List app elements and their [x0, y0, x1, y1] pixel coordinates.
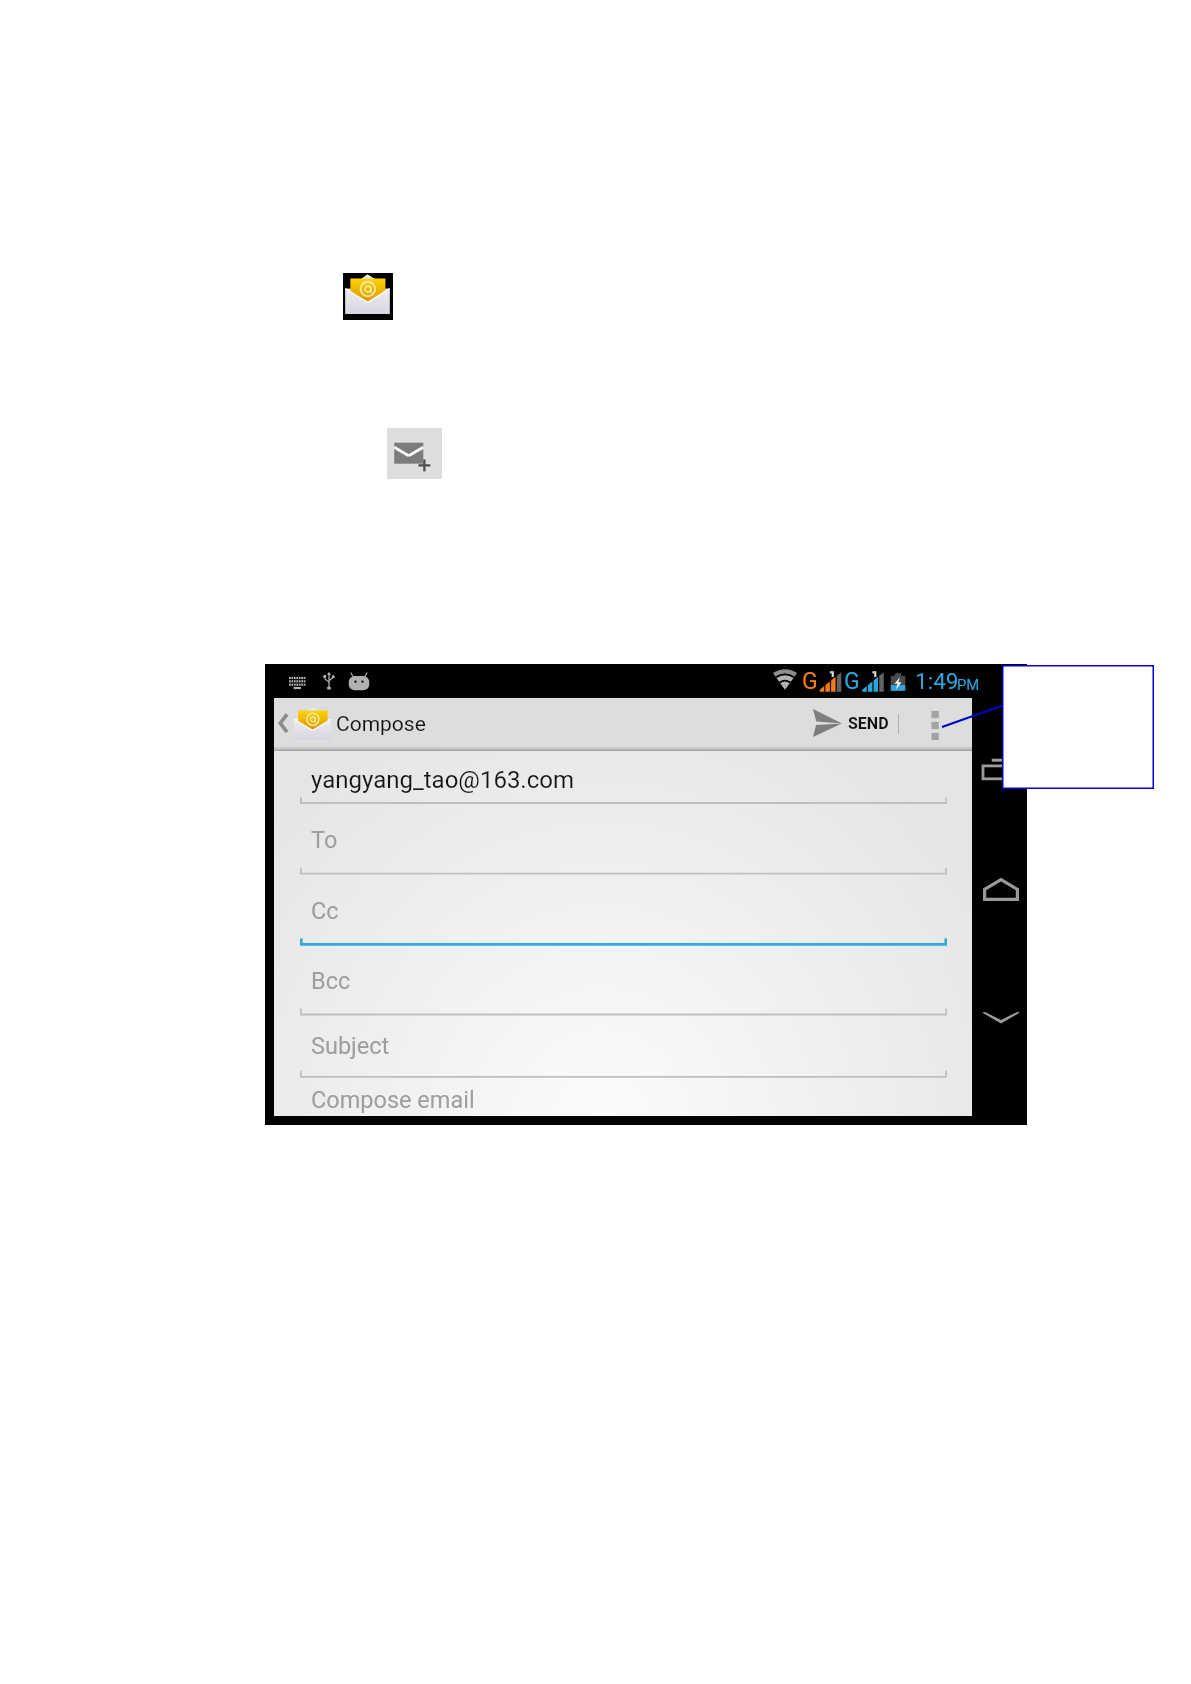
- button[interactable]: yangyang_tao@163.com: [311, 766, 574, 794]
- staticText: To: [311, 826, 338, 854]
- staticText: G: [802, 668, 818, 695]
- button[interactable]: Back: [982, 1012, 1020, 1024]
- button[interactable]: Navigate up: [278, 708, 290, 738]
- staticText: PM: [957, 676, 980, 693]
- button[interactable]: Recent apps: [982, 756, 1022, 781]
- button[interactable]: SEND: [813, 702, 889, 744]
- staticText: Subject: [311, 1032, 390, 1060]
- button[interactable]: Compose email: [311, 1086, 475, 1114]
- staticText: Compose: [336, 712, 426, 737]
- staticText: Compose email: [311, 1086, 475, 1114]
- staticText: SEND: [848, 714, 889, 733]
- staticText: Cc: [311, 897, 339, 925]
- button[interactable]: Compose email icon: [387, 428, 442, 479]
- button[interactable]: Cc: [311, 897, 339, 925]
- staticText: yangyang_tao@163.com: [311, 766, 574, 794]
- button[interactable]: Home: [983, 878, 1019, 901]
- button[interactable]: Email app icon: [343, 273, 393, 320]
- staticText: G: [844, 668, 860, 695]
- button[interactable]: More options: [924, 705, 946, 743]
- staticText: Bcc: [311, 967, 351, 995]
- staticText: 1:49: [915, 668, 959, 694]
- button[interactable]: To: [311, 826, 338, 854]
- button[interactable]: Bcc: [311, 967, 351, 995]
- button[interactable]: Subject: [311, 1032, 390, 1060]
